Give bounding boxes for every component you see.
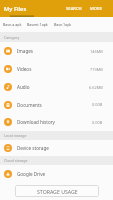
staticText: 6.62MB xyxy=(89,85,103,90)
staticText: Basent.1apk xyxy=(27,22,48,27)
staticText: Documents xyxy=(17,102,42,108)
button[interactable]: Images xyxy=(0,42,113,60)
staticText: Local storage xyxy=(4,133,27,138)
staticText: 0.00B xyxy=(92,120,103,125)
button[interactable]: Base.1apk xyxy=(50,17,75,32)
staticText: 719MB xyxy=(90,67,103,72)
staticText: Google Drive xyxy=(17,171,46,177)
button[interactable]: Device storage xyxy=(0,140,113,156)
button[interactable]: Basent.1apk xyxy=(25,17,50,32)
staticText: Images xyxy=(17,48,34,54)
staticText: STORAGE USAGE xyxy=(37,188,78,195)
button[interactable]: Documents xyxy=(0,96,113,113)
staticText: My Files xyxy=(4,5,27,13)
button[interactable]: Base-a.apk xyxy=(0,17,25,32)
staticText: Category xyxy=(4,35,20,40)
staticText: Audio xyxy=(17,84,30,90)
staticText: Base-a.apk xyxy=(3,22,22,27)
staticText: Base.1apk xyxy=(54,22,72,27)
button[interactable]: Videos xyxy=(0,60,113,78)
button[interactable]: Download history xyxy=(0,113,113,131)
button[interactable]: Google Drive xyxy=(0,165,113,182)
button[interactable]: MORE xyxy=(87,2,106,16)
staticText: Download history xyxy=(17,119,55,125)
staticText: SEARCH xyxy=(66,6,82,12)
button[interactable]: STORAGE USAGE xyxy=(15,185,99,197)
staticText: 0.00B xyxy=(92,102,103,107)
button[interactable]: SEARCH xyxy=(63,2,85,16)
staticText: 146MB xyxy=(90,49,103,54)
button[interactable]: Audio xyxy=(0,78,113,96)
staticText: MORE xyxy=(90,6,103,12)
staticText: Videos xyxy=(17,66,32,72)
staticText: Device storage xyxy=(17,145,49,151)
staticText: Cloud storage xyxy=(4,158,28,163)
